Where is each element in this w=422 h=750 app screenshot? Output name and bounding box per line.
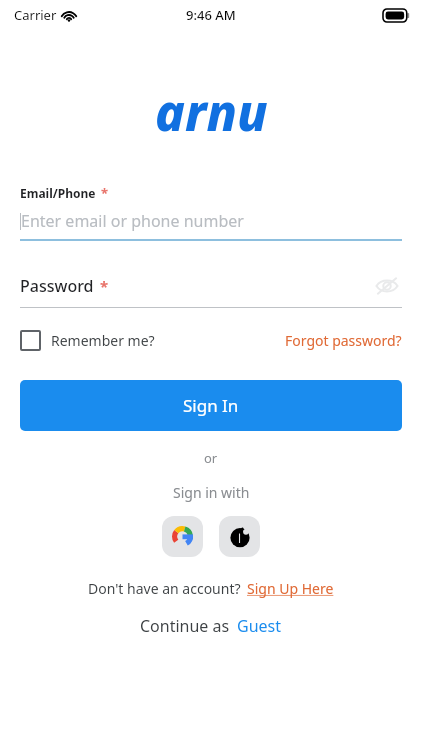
- button[interactable]: Forgot password?: [285, 331, 402, 350]
- staticText: Enter email or phone number: [21, 210, 244, 232]
- button[interactable]: Enter email or phone number: [20, 208, 402, 234]
- button[interactable]: Sign in with Apple: [219, 516, 260, 557]
- staticText: Sign In: [183, 394, 239, 417]
- staticText: Password: [20, 275, 94, 297]
- button[interactable]: Remember me?: [20, 330, 155, 351]
- staticText: arnu: [155, 78, 268, 146]
- button[interactable]: Sign in with Google: [162, 516, 203, 557]
- button[interactable]: Guest: [237, 615, 282, 637]
- staticText: Forgot password?: [285, 331, 402, 350]
- staticText: Carrier: [14, 6, 57, 24]
- button[interactable]: Sign In: [20, 380, 402, 431]
- staticText: *: [101, 184, 109, 202]
- staticText: Don't have an account?: [88, 579, 241, 598]
- staticText: Email/Phone: [20, 185, 96, 201]
- staticText: Remember me?: [51, 331, 155, 350]
- staticText: or: [204, 449, 218, 467]
- staticText: Continue as: [140, 615, 230, 637]
- staticText: 9:46 AM: [186, 6, 236, 24]
- staticText: Sign in with: [173, 483, 250, 502]
- staticText: Guest: [237, 615, 282, 637]
- button[interactable]: Sign Up Here: [247, 579, 334, 598]
- staticText: *: [100, 276, 109, 296]
- button[interactable]: Show password: [372, 271, 402, 301]
- staticText: Sign Up Here: [247, 579, 334, 598]
